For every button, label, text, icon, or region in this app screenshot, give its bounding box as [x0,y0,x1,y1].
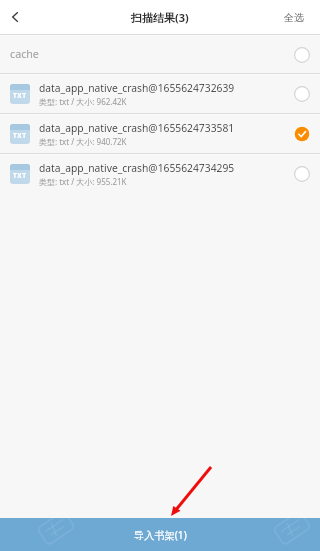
staticText: TXT [13,171,27,180]
staticText: TXT [13,91,27,100]
button[interactable]: TXT [0,155,320,193]
button[interactable]: Select item [294,86,310,102]
staticText: 类型: txt / 大小: 962.42K [39,96,127,107]
button[interactable]: Select item [294,126,310,142]
button[interactable]: Select item [294,47,310,63]
staticText: TXT [13,131,27,140]
staticText: 扫描结果(3) [131,10,189,25]
button[interactable]: TXT [0,115,320,153]
button[interactable]: 全选 [272,0,320,34]
staticText: data_app_native_crash@1655624733581 [39,121,235,135]
button[interactable]: TXT [0,75,320,113]
staticText: 全选 [284,11,304,24]
button[interactable]: cache [0,36,320,73]
button[interactable]: 导入书架(1) [0,518,320,551]
button[interactable]: Back [0,0,30,34]
button[interactable]: Select item [294,166,310,182]
staticText: data_app_native_crash@1655624732639 [39,81,235,95]
staticText: 导入书架(1) [134,528,187,542]
staticText: 类型: txt / 大小: 940.72K [39,136,127,147]
staticText: data_app_native_crash@1655624734295 [39,161,235,175]
staticText: cache [10,47,39,62]
staticText: 类型: txt / 大小: 955.21K [39,176,127,187]
